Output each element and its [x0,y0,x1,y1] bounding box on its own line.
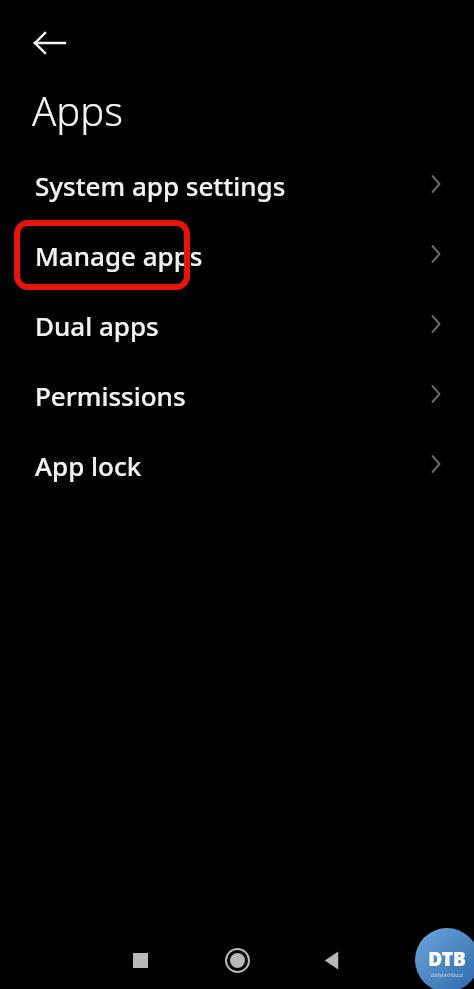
staticText: dailytechbuzz [431,972,463,979]
staticText: Manage apps [35,238,203,273]
staticText: Dual apps [35,308,159,343]
staticText: Apps [32,83,123,135]
button[interactable]: Dual apps [0,293,474,355]
button[interactable]: Manage apps [0,223,474,285]
staticText: Permissions [35,378,186,413]
button[interactable]: App lock [0,433,474,495]
staticText: System app settings [35,168,286,203]
button[interactable]: System app settings [0,153,474,215]
button[interactable]: Permissions [0,363,474,425]
button[interactable]: Back [307,936,356,985]
staticText: App lock [35,448,142,483]
button[interactable]: Home [213,936,262,985]
button[interactable]: Back [22,18,78,68]
staticText: DTB [428,946,466,972]
button[interactable]: Recent apps [116,936,165,985]
